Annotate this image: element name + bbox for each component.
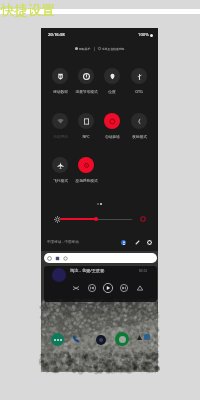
button[interactable]: NFC [73,113,99,139]
button[interactable]: 移动数据 [47,68,73,94]
button[interactable]: User [117,236,129,248]
button[interactable]: WeChat [115,332,129,346]
button[interactable]: Next [120,284,128,292]
staticText: 隐私保护 [79,47,91,51]
staticText: 03:12 [139,269,148,273]
button[interactable]: 飞行模式 [47,157,73,183]
staticText: 流量节省模式 [75,89,98,94]
button[interactable]: App [144,334,150,340]
button[interactable]: Cast [137,285,143,291]
staticText: 无线网络 [53,134,68,139]
button[interactable]: OTG [126,68,152,94]
staticText: 移动数据 [53,89,68,94]
button[interactable]: Brightness [51,213,63,225]
staticText: 位置 [108,89,116,94]
button[interactable]: 夜间模式 [126,113,152,139]
staticText: 应急呼救模式 [75,178,98,183]
button[interactable]: Play [103,283,113,293]
staticText: OTG [135,89,143,94]
staticText: 100% [138,32,149,38]
button[interactable]: Edit [131,236,143,248]
button[interactable]: 应急呼救模式 [73,157,99,183]
staticText: 自动旋转 [105,134,120,139]
button[interactable]: 无线网络 [47,113,73,139]
button[interactable]: Search [44,253,157,263]
button[interactable]: Shuffle [73,285,79,291]
staticText: 夜间模式 [132,134,147,139]
button[interactable]: Messages [51,333,64,346]
button[interactable]: Settings [143,236,155,248]
staticText: 快捷设置 [1,2,55,19]
button[interactable]: Auto brightness [137,213,149,225]
button[interactable]: Previous [88,284,96,292]
button[interactable]: 位置 [99,68,125,94]
staticText: NFC [82,134,90,139]
button[interactable]: 自动旋转 [99,113,125,139]
button[interactable]: Phone [71,333,82,344]
staticText: 20:16:38 [48,32,65,38]
staticText: 飞行模式 [53,178,68,183]
button[interactable]: 流量节省模式 [73,68,99,94]
button[interactable]: Camera [96,335,106,345]
staticText: 手机正在快速充电 [102,47,125,51]
staticText: 淘汰 - 花粥/王胜娶 [70,268,105,274]
staticText: 中国移动 - 中国移动 [47,239,79,244]
